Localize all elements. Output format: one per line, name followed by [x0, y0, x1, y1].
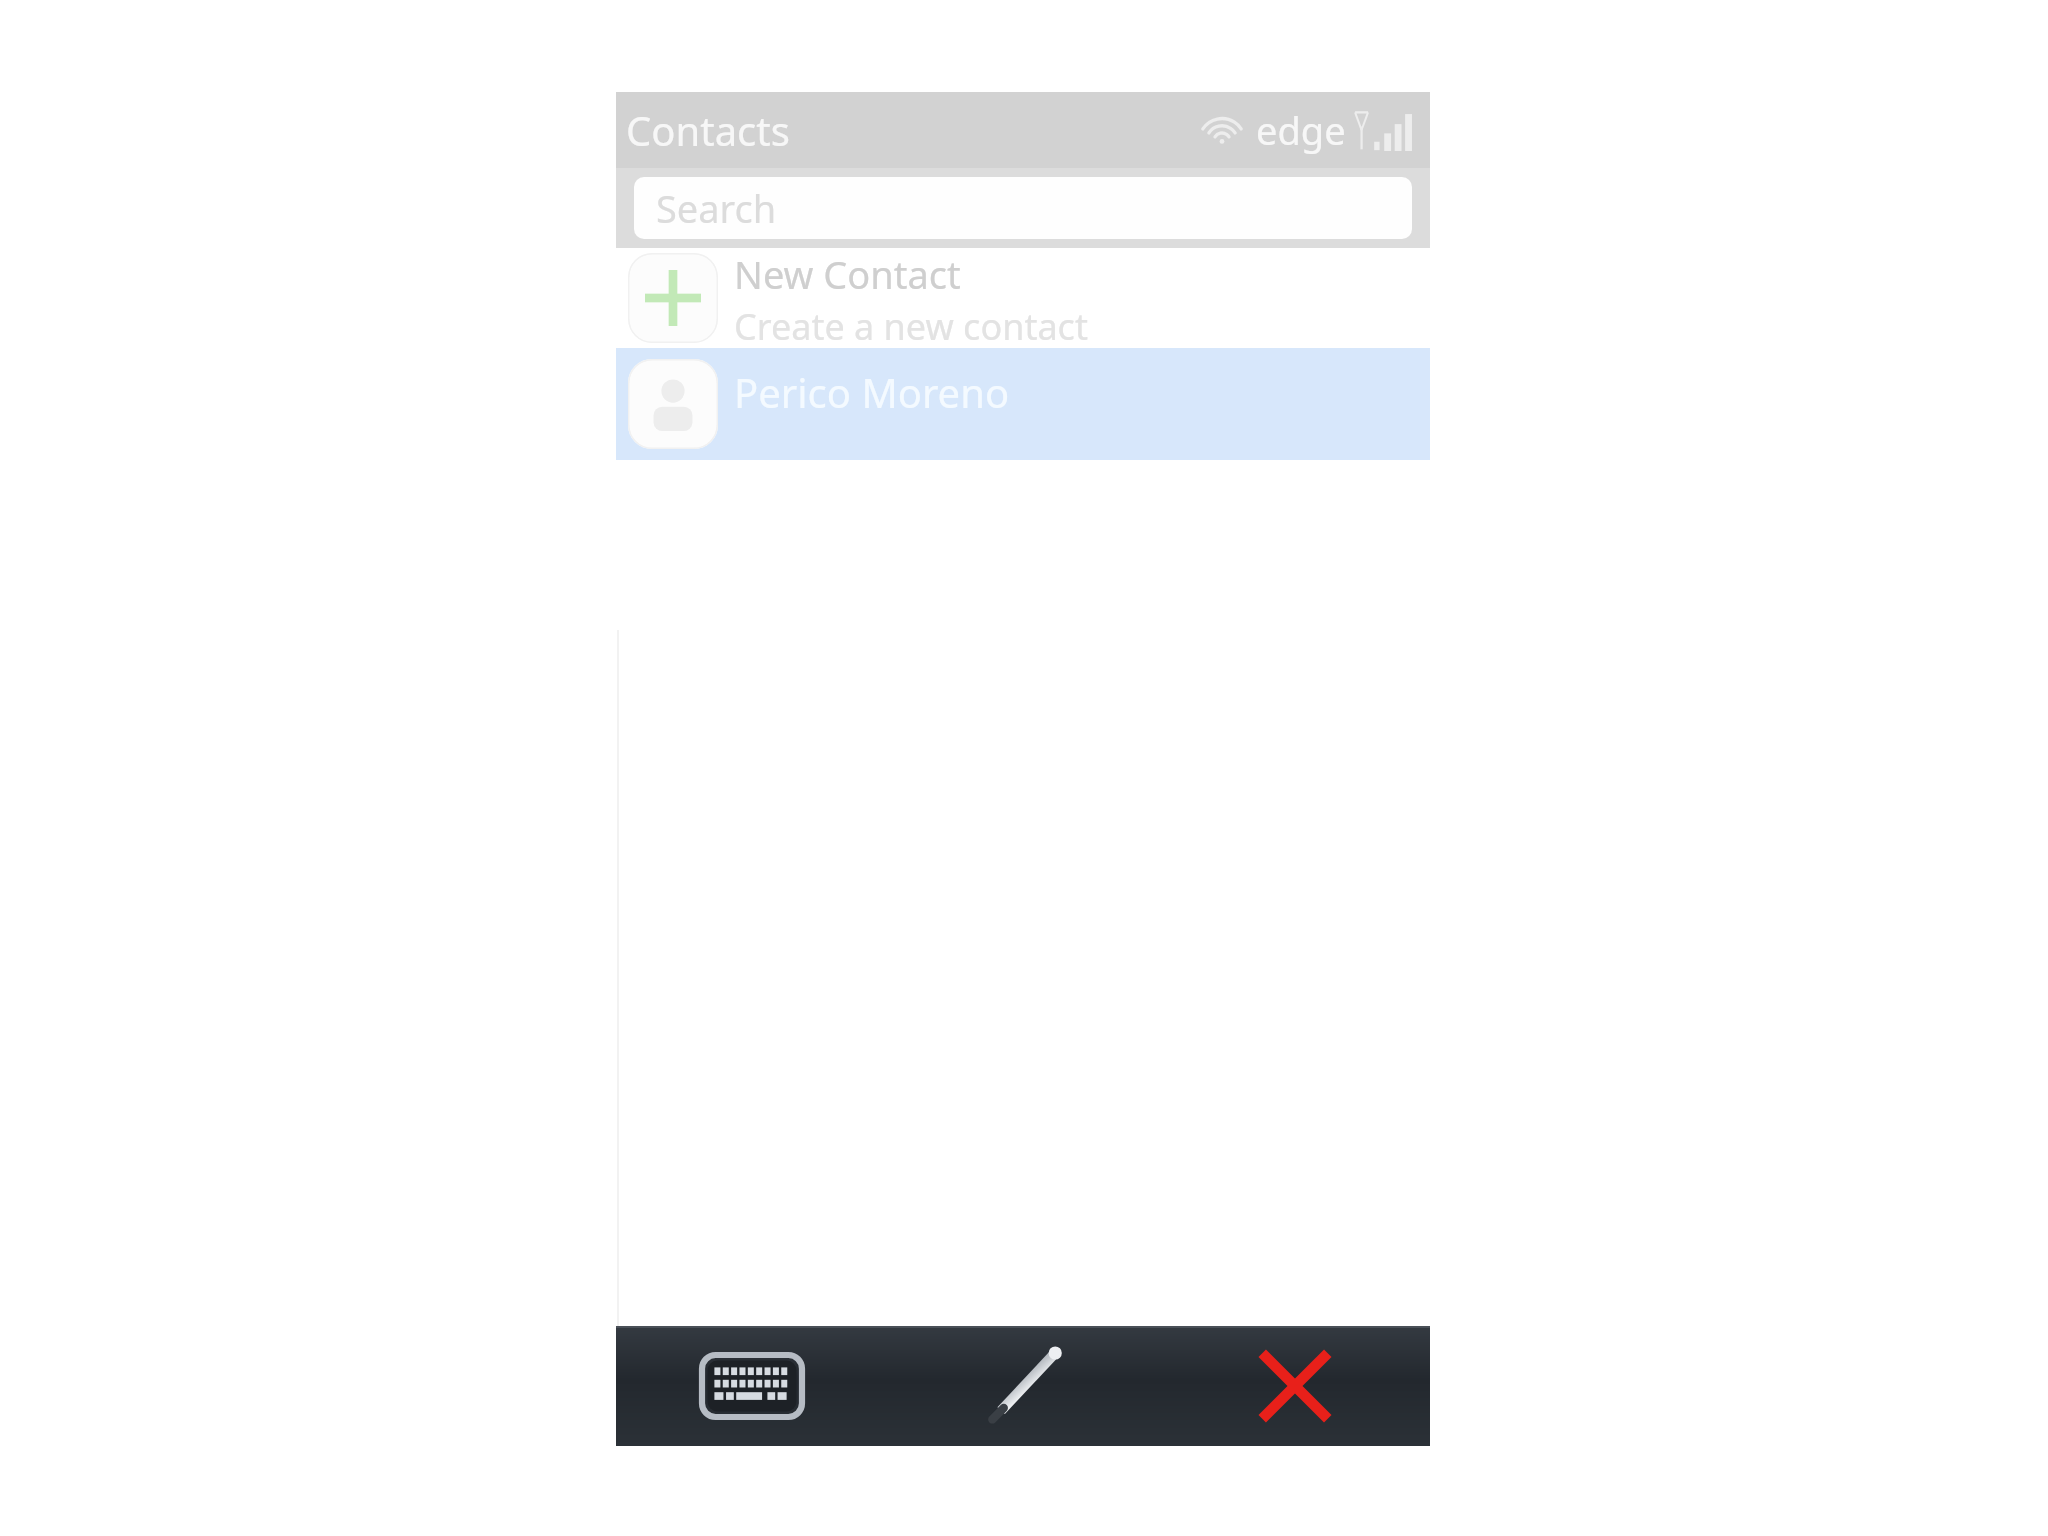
staticText: Search [656, 182, 777, 234]
staticText: edge [1256, 104, 1346, 156]
staticText: New Contact [734, 248, 961, 300]
button[interactable]: Close [1159, 1326, 1430, 1446]
button[interactable]: Perico Moreno [616, 348, 1430, 460]
staticText: Contacts [626, 103, 790, 157]
button[interactable]: Edit [888, 1326, 1159, 1446]
staticText: Create a new contact [734, 302, 1088, 348]
button[interactable]: Search [634, 177, 1412, 239]
staticText: Perico Moreno [734, 365, 1010, 419]
button[interactable]: New Contact [616, 248, 1430, 348]
button[interactable]: Keyboard [616, 1326, 888, 1446]
